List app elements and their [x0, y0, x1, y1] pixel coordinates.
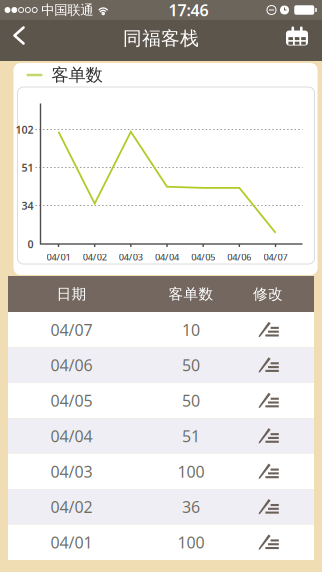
staticText: 04/02 [83, 251, 107, 263]
staticText: 102 [15, 122, 33, 137]
staticText: 100 [177, 532, 204, 553]
staticText: 100 [177, 461, 204, 482]
button[interactable]: Back [0, 20, 51, 61]
staticText: 50 [182, 354, 200, 376]
staticText: 34 [21, 198, 33, 213]
staticText: 0 [27, 237, 33, 251]
button[interactable]: 04/05 [8, 383, 314, 418]
staticText: 51 [182, 425, 200, 447]
staticText: 17:46 [169, 0, 209, 21]
button[interactable]: 04/01 [8, 525, 314, 560]
staticText: 中国联通 [41, 2, 93, 18]
staticText: 10 [182, 319, 200, 340]
button[interactable]: 04/03 [8, 454, 314, 489]
staticText: 修改 [253, 285, 283, 303]
staticText: 日期 [56, 285, 86, 303]
staticText: 04/07 [50, 319, 92, 340]
staticText: 客单数 [168, 285, 213, 303]
button[interactable]: 04/04 [8, 418, 314, 454]
staticText: 51 [21, 160, 33, 175]
staticText: 同福客栈 [123, 27, 199, 50]
staticText: 04/05 [50, 390, 92, 411]
staticText: 04/06 [50, 354, 92, 376]
staticText: 04/01 [50, 532, 92, 553]
staticText: 04/04 [155, 251, 179, 263]
button[interactable]: Calendar [267, 21, 322, 59]
staticText: 04/03 [50, 461, 92, 482]
staticText: 50 [182, 390, 200, 411]
staticText: 客单数 [51, 64, 102, 86]
staticText: 04/06 [227, 251, 251, 263]
button[interactable]: 04/06 [8, 347, 314, 383]
button[interactable]: 04/07 [8, 312, 314, 347]
staticText: 04/03 [119, 251, 143, 263]
staticText: 04/01 [46, 251, 70, 263]
staticText: 04/07 [263, 251, 287, 263]
button[interactable]: 04/02 [8, 489, 314, 525]
staticText: 04/05 [191, 251, 215, 263]
staticText: 36 [182, 496, 200, 517]
staticText: 04/04 [50, 425, 92, 447]
staticText: 04/02 [50, 496, 92, 517]
